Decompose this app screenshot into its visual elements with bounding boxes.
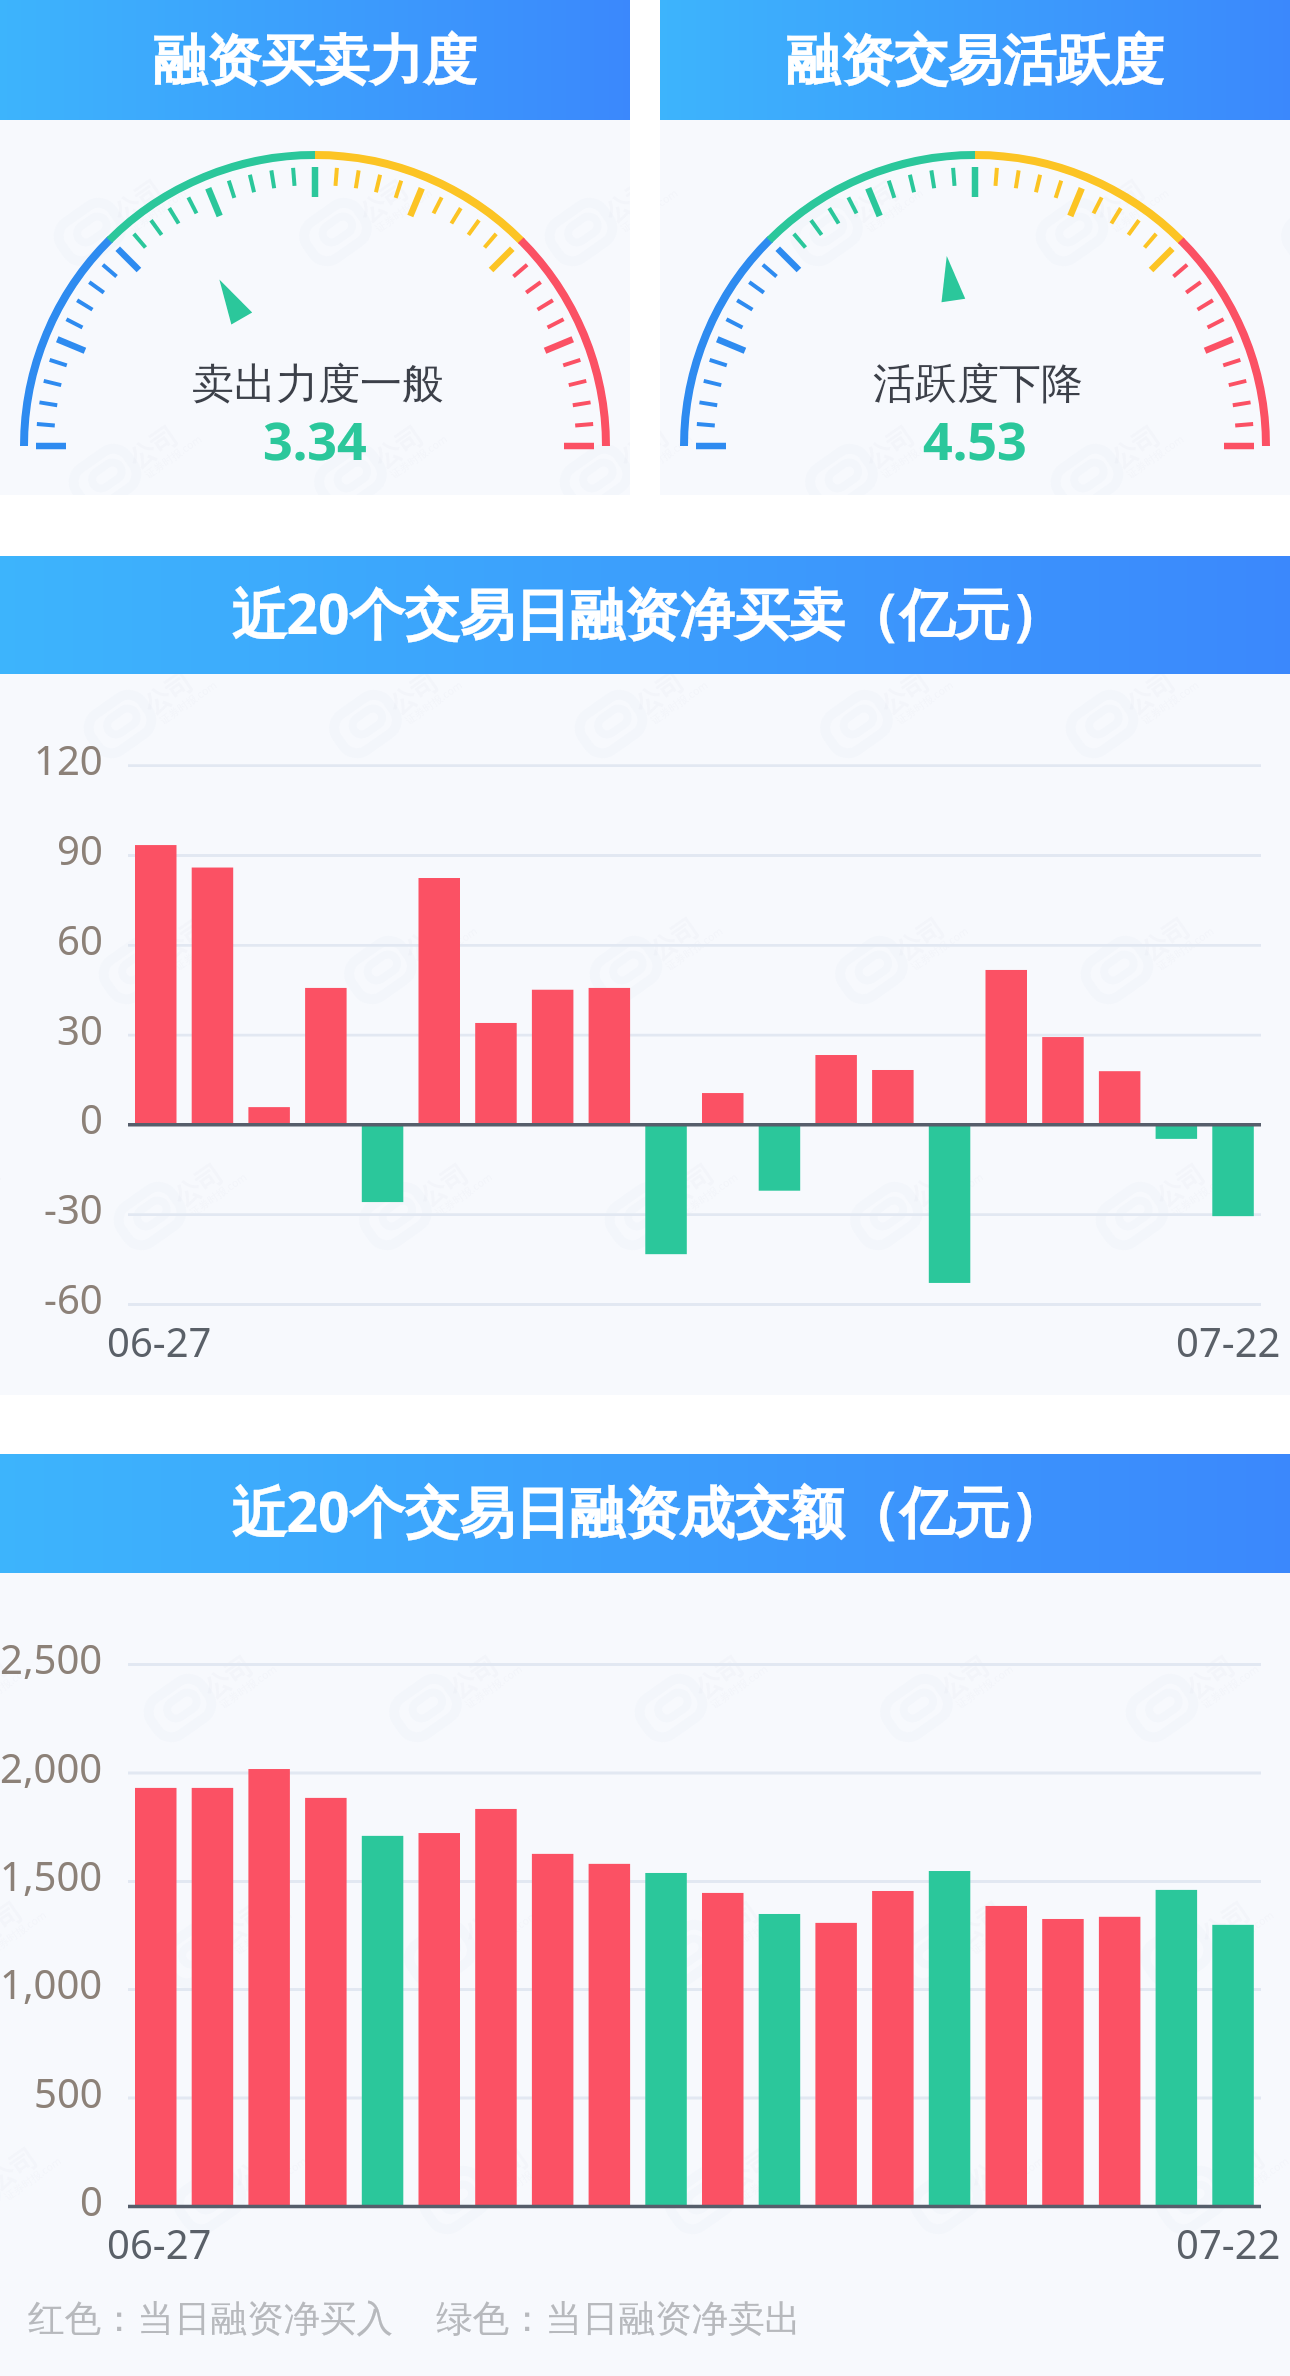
button[interactable]: 融资交易活跃度 活跃度下降 4.53: [660, 0, 1290, 495]
button[interactable]: 近20个交易日融资净买卖（亿元）: [0, 556, 1290, 1395]
button[interactable]: 近20个交易日融资成交额（亿元）: [0, 1454, 1290, 2284]
button[interactable]: 融资买卖力度 卖出力度一般 3.34: [0, 0, 630, 495]
